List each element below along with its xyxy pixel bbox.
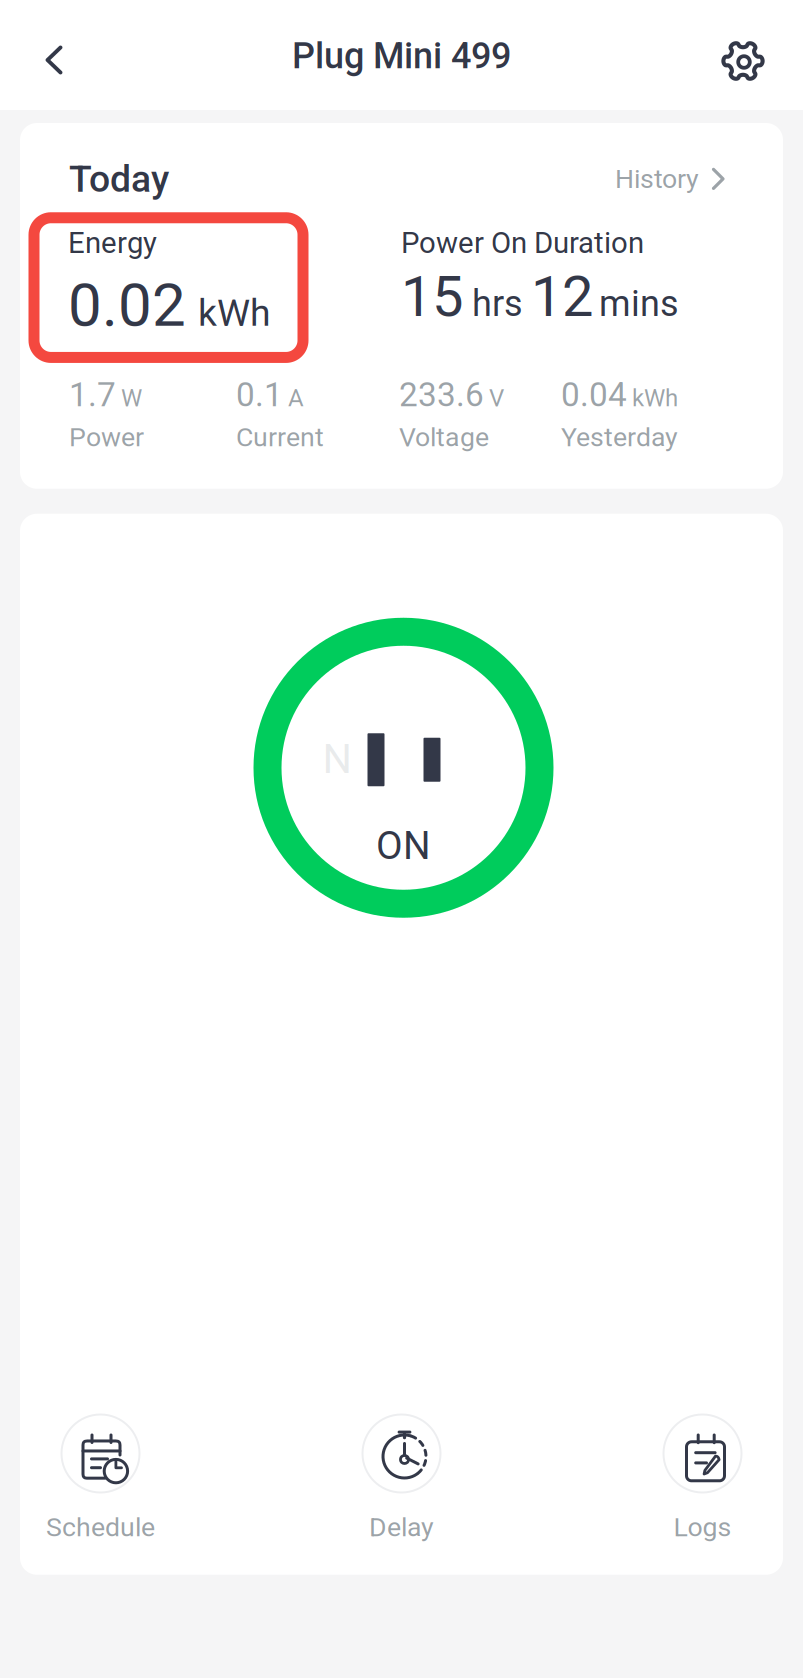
staticText: 0.02 xyxy=(68,270,186,340)
staticText: N xyxy=(322,734,351,783)
staticText: History xyxy=(615,163,699,194)
staticText: 0.1 xyxy=(236,375,283,414)
staticText: Current xyxy=(236,421,324,453)
staticText: V xyxy=(489,384,504,412)
staticText: Plug Mini 499 xyxy=(292,35,511,77)
button[interactable]: Delay xyxy=(321,1413,482,1543)
staticText: Energy xyxy=(68,226,157,260)
staticText: Schedule xyxy=(46,1511,155,1543)
button[interactable]: Schedule xyxy=(20,1413,181,1543)
staticText: Voltage xyxy=(399,421,489,453)
staticText: Logs xyxy=(673,1511,731,1543)
staticText: mins xyxy=(599,283,679,325)
staticText: 15 xyxy=(401,264,463,330)
staticText: 233.6 xyxy=(399,375,484,414)
staticText: 0.04 xyxy=(561,375,627,414)
staticText: kWh xyxy=(198,291,271,335)
staticText: 12 xyxy=(531,264,593,330)
staticText: Yesterday xyxy=(561,421,678,453)
staticText: Power On Duration xyxy=(401,226,644,260)
button[interactable]: Logs xyxy=(622,1413,783,1543)
button[interactable]: History xyxy=(615,163,726,194)
button[interactable]: Settings xyxy=(702,11,788,99)
staticText: Today xyxy=(69,157,169,201)
staticText: A xyxy=(288,384,304,412)
staticText: 1.7 xyxy=(69,375,116,414)
staticText: hrs xyxy=(472,283,523,325)
staticText: Power xyxy=(69,421,144,453)
staticText: ON xyxy=(376,823,431,868)
staticText: Delay xyxy=(369,1511,434,1543)
staticText: kWh xyxy=(632,384,678,412)
button[interactable]: Back xyxy=(11,11,97,99)
staticText: W xyxy=(121,384,142,412)
